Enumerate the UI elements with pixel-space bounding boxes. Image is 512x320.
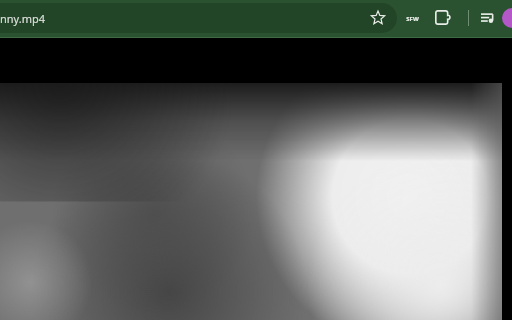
- button[interactable]: [0, 3, 397, 33]
- button[interactable]: SFW: [400, 9, 424, 29]
- button[interactable]: Media controls: [476, 5, 501, 30]
- button[interactable]: Bookmark this page: [364, 4, 391, 31]
- button[interactable]: Profile: [502, 8, 512, 28]
- staticText: SFW: [406, 15, 419, 23]
- staticText: nny.mp4: [0, 11, 46, 26]
- button[interactable]: Extensions: [430, 5, 455, 30]
